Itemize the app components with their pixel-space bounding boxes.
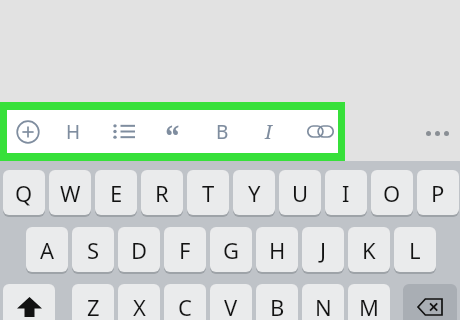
button[interactable]: A <box>26 227 68 272</box>
staticText: H <box>269 235 286 265</box>
staticText: E <box>110 178 123 208</box>
staticText: “ <box>165 116 180 157</box>
staticText: F <box>179 235 191 265</box>
button[interactable]: M <box>348 284 390 320</box>
button[interactable]: Bulleted list <box>102 110 146 153</box>
staticText: I <box>342 178 350 208</box>
staticText: V <box>224 292 238 320</box>
button[interactable]: Shift <box>3 284 55 320</box>
staticText: W <box>60 178 81 208</box>
staticText: Z <box>87 292 100 320</box>
button[interactable]: Add <box>6 110 50 153</box>
staticText: X <box>133 292 146 320</box>
button[interactable]: Heading <box>51 110 95 153</box>
button[interactable]: R <box>141 170 183 215</box>
staticText: C <box>178 292 192 320</box>
button[interactable]: Y <box>233 170 275 215</box>
button[interactable]: More options <box>417 119 457 147</box>
button[interactable]: C <box>164 284 206 320</box>
staticText: T <box>202 178 215 208</box>
button[interactable]: T <box>187 170 229 215</box>
button[interactable]: Quote <box>150 110 194 153</box>
staticText: J <box>320 235 327 265</box>
staticText: I <box>265 119 272 145</box>
staticText: G <box>223 235 240 265</box>
staticText: Y <box>248 178 261 208</box>
button[interactable]: B <box>256 284 298 320</box>
staticText: P <box>431 178 445 208</box>
staticText: R <box>155 178 169 208</box>
staticText: B <box>216 119 229 145</box>
staticText: S <box>87 235 100 265</box>
staticText: O <box>383 178 401 208</box>
button[interactable]: E <box>95 170 137 215</box>
staticText: D <box>131 235 148 265</box>
button[interactable]: L <box>394 227 436 272</box>
button[interactable]: S <box>72 227 114 272</box>
button[interactable]: O <box>371 170 413 215</box>
button[interactable]: J <box>302 227 344 272</box>
staticText: A <box>40 235 55 265</box>
staticText: U <box>292 178 309 208</box>
staticText: K <box>362 235 376 265</box>
button[interactable]: X <box>118 284 160 320</box>
button[interactable]: D <box>118 227 160 272</box>
button[interactable]: V <box>210 284 252 320</box>
button[interactable]: K <box>348 227 390 272</box>
button[interactable]: Bold <box>200 110 244 153</box>
button[interactable]: H <box>256 227 298 272</box>
button[interactable]: I <box>325 170 367 215</box>
button[interactable]: U <box>279 170 321 215</box>
button[interactable]: F <box>164 227 206 272</box>
button[interactable]: Z <box>72 284 114 320</box>
button[interactable]: W <box>49 170 91 215</box>
button[interactable]: Link <box>298 110 342 153</box>
button[interactable]: Q <box>3 170 45 215</box>
staticText: N <box>315 292 332 320</box>
button[interactable]: Delete <box>403 284 457 320</box>
button[interactable]: P <box>417 170 459 215</box>
staticText: B <box>270 292 285 320</box>
button[interactable]: N <box>302 284 344 320</box>
staticText: H <box>66 119 81 145</box>
button[interactable]: Italic <box>246 110 290 153</box>
staticText: M <box>359 292 379 320</box>
button[interactable]: G <box>210 227 252 272</box>
staticText: Q <box>15 178 33 208</box>
staticText: L <box>409 235 421 265</box>
